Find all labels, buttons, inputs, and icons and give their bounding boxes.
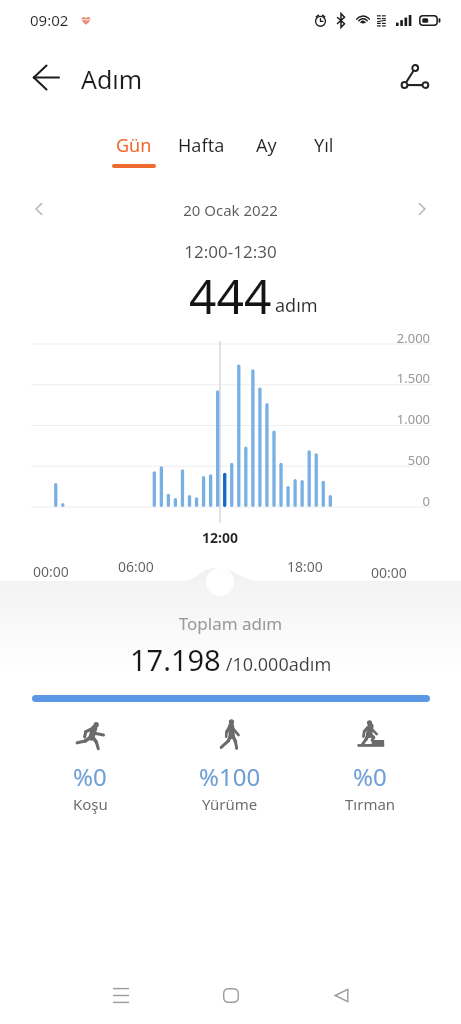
- button[interactable]: Back: [24, 55, 68, 99]
- staticText: Gün: [116, 133, 152, 158]
- button[interactable]: Hafta: [170, 133, 232, 179]
- button[interactable]: Yıl: [293, 133, 355, 179]
- staticText: 1.000: [0, 410, 430, 428]
- staticText: 12:00-12:30: [0, 240, 461, 263]
- staticText: 444: [189, 263, 272, 328]
- staticText: 06:00: [118, 557, 154, 576]
- staticText: Ay: [256, 133, 277, 158]
- staticText: /10.000adım: [221, 652, 332, 677]
- staticText: Yürüme: [202, 794, 258, 814]
- staticText: 500: [0, 451, 430, 469]
- staticText: 00:00: [33, 562, 69, 581]
- staticText: %100: [199, 760, 261, 793]
- button[interactable]: Share: [393, 55, 437, 99]
- staticText: %0: [353, 760, 387, 793]
- button[interactable]: Home: [176, 971, 286, 1019]
- staticText: adım: [275, 293, 318, 318]
- staticText: Tırman: [345, 794, 396, 814]
- staticText: Koşu: [73, 794, 108, 814]
- staticText: 2.000: [0, 329, 430, 347]
- button[interactable]: %0: [20, 718, 160, 814]
- staticText: 17.198: [130, 640, 221, 679]
- staticText: %0: [73, 760, 107, 793]
- button[interactable]: Ay: [235, 133, 297, 179]
- staticText: 0: [0, 492, 430, 510]
- staticText: 12:00: [202, 528, 238, 547]
- staticText: 18:00: [287, 557, 323, 576]
- button[interactable]: %100: [160, 718, 300, 814]
- staticText: Toplam adım: [0, 612, 461, 635]
- button[interactable]: Recents: [66, 971, 176, 1019]
- staticText: Adım: [81, 62, 143, 96]
- staticText: 09:02: [30, 10, 69, 30]
- button[interactable]: Gün: [103, 133, 165, 179]
- staticText: 1.500: [0, 369, 430, 387]
- button[interactable]: %0: [300, 718, 440, 814]
- staticText: 20 Ocak 2022: [0, 200, 461, 220]
- button[interactable]: Next day: [405, 192, 439, 226]
- button[interactable]: Back: [286, 971, 396, 1019]
- staticText: 00:00: [371, 563, 407, 582]
- staticText: Hafta: [178, 133, 225, 158]
- button[interactable]: Previous day: [22, 192, 56, 226]
- staticText: Yıl: [314, 133, 334, 158]
